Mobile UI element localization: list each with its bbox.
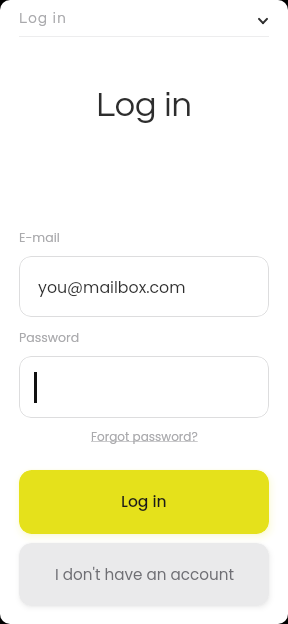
button[interactable]: you@mailbox.com [19, 256, 269, 317]
button[interactable]: Forgot password? [91, 428, 198, 445]
staticText: Password [19, 329, 80, 346]
staticText: E-mail [19, 229, 60, 246]
staticText: Log in [96, 86, 192, 123]
staticText: I don't have an account [55, 564, 234, 585]
staticText: Log in [19, 11, 68, 26]
button[interactable]: Log in [0, 0, 288, 37]
button[interactable]: Log in [19, 470, 269, 534]
other: Expand [256, 14, 270, 28]
staticText: you@mailbox.com [38, 276, 186, 298]
button[interactable]: I don't have an account [19, 543, 269, 606]
staticText: Log in [121, 491, 167, 513]
button[interactable] [19, 356, 269, 418]
